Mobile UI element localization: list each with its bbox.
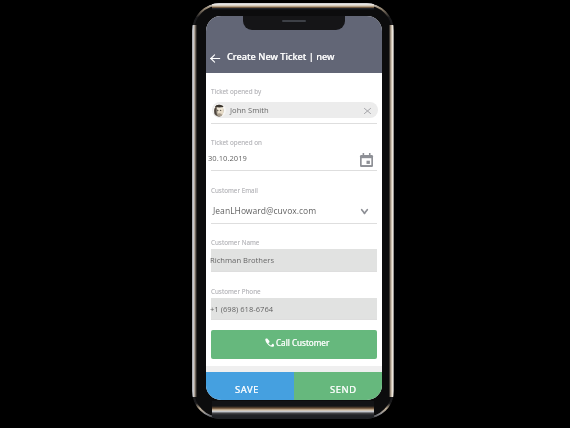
staticText: SAVE — [235, 383, 260, 396]
staticText: Customer Phone — [211, 287, 261, 296]
staticText: Call Customer — [276, 337, 330, 348]
staticText: John Smith — [230, 105, 269, 115]
button[interactable]: SEND — [294, 372, 382, 400]
staticText: SEND — [330, 383, 357, 396]
button[interactable]: SAVE — [206, 372, 294, 400]
button[interactable]: +1 (698) 618-6764 — [211, 298, 377, 320]
staticText: Create New Ticket | new — [227, 50, 335, 63]
staticText: Ticket opened by — [211, 87, 262, 96]
button[interactable]: 30.10.2019 — [211, 148, 377, 166]
button[interactable]: JeanLHoward@cuvox.com — [211, 199, 377, 217]
button[interactable]: Pick date — [358, 152, 374, 168]
button[interactable]: John Smith — [212, 102, 378, 118]
staticText: Richman Brothers — [210, 255, 275, 265]
button[interactable]: Remove John Smith — [362, 105, 373, 116]
staticText: Customer Name — [211, 238, 260, 247]
button[interactable]: Call Customer — [211, 330, 377, 359]
button[interactable]: Back — [206, 48, 225, 68]
staticText: +1 (698) 618-6764 — [210, 304, 274, 314]
staticText: JeanLHoward@cuvox.com — [213, 205, 317, 217]
staticText: Ticket opened on — [211, 138, 262, 147]
button[interactable]: Richman Brothers — [211, 249, 377, 271]
staticText: 30.10.2019 — [208, 153, 247, 163]
staticText: Customer Email — [211, 186, 258, 195]
